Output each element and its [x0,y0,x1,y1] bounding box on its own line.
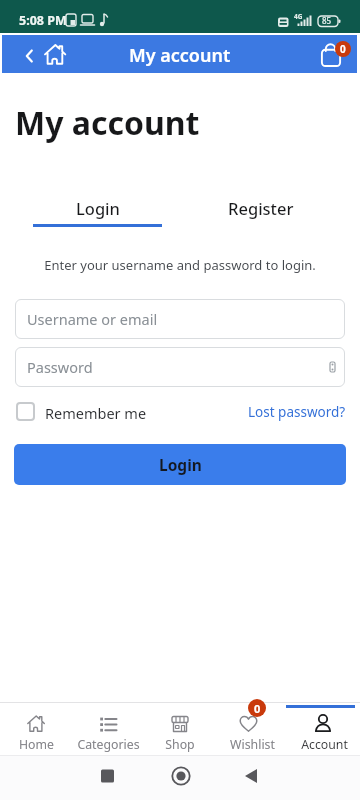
button[interactable]: Password [15,347,345,387]
staticText: Password [27,357,93,377]
staticText: Home [19,736,54,753]
staticText: 4G [294,12,303,21]
staticText: Login [76,197,120,219]
button[interactable]: Login [14,444,346,485]
staticText: My account [129,43,231,68]
staticText: 0 [254,701,261,716]
button[interactable] [42,41,70,67]
staticText: Categories [77,736,140,753]
staticText: Account [301,736,348,753]
staticText: Enter your username and password to logi… [44,256,316,274]
staticText: My account [15,101,200,145]
button[interactable]: Shop [144,703,216,755]
staticText: Wishlist [230,736,275,753]
button[interactable] [16,402,35,421]
staticText: 0 [340,42,346,56]
button[interactable]: Categories [72,703,144,755]
button[interactable] [12,39,42,69]
staticText: Register [228,197,294,219]
button[interactable]: Account [288,703,360,755]
button[interactable]: Lost password? [248,403,346,421]
button[interactable]: Login [33,190,162,225]
button[interactable]: 0 [312,37,354,71]
button[interactable]: Username or email [15,299,345,339]
staticText: Login [159,454,202,475]
staticText: 85 [322,15,332,26]
button[interactable]: Wishlist [216,703,288,755]
staticText: Shop [165,736,195,753]
button[interactable]: Register [196,190,325,225]
staticText: 5:08 PM [19,12,67,29]
staticText: Remember me [45,403,147,423]
staticText: Username or email [27,309,158,329]
button[interactable]: Home [0,703,72,755]
